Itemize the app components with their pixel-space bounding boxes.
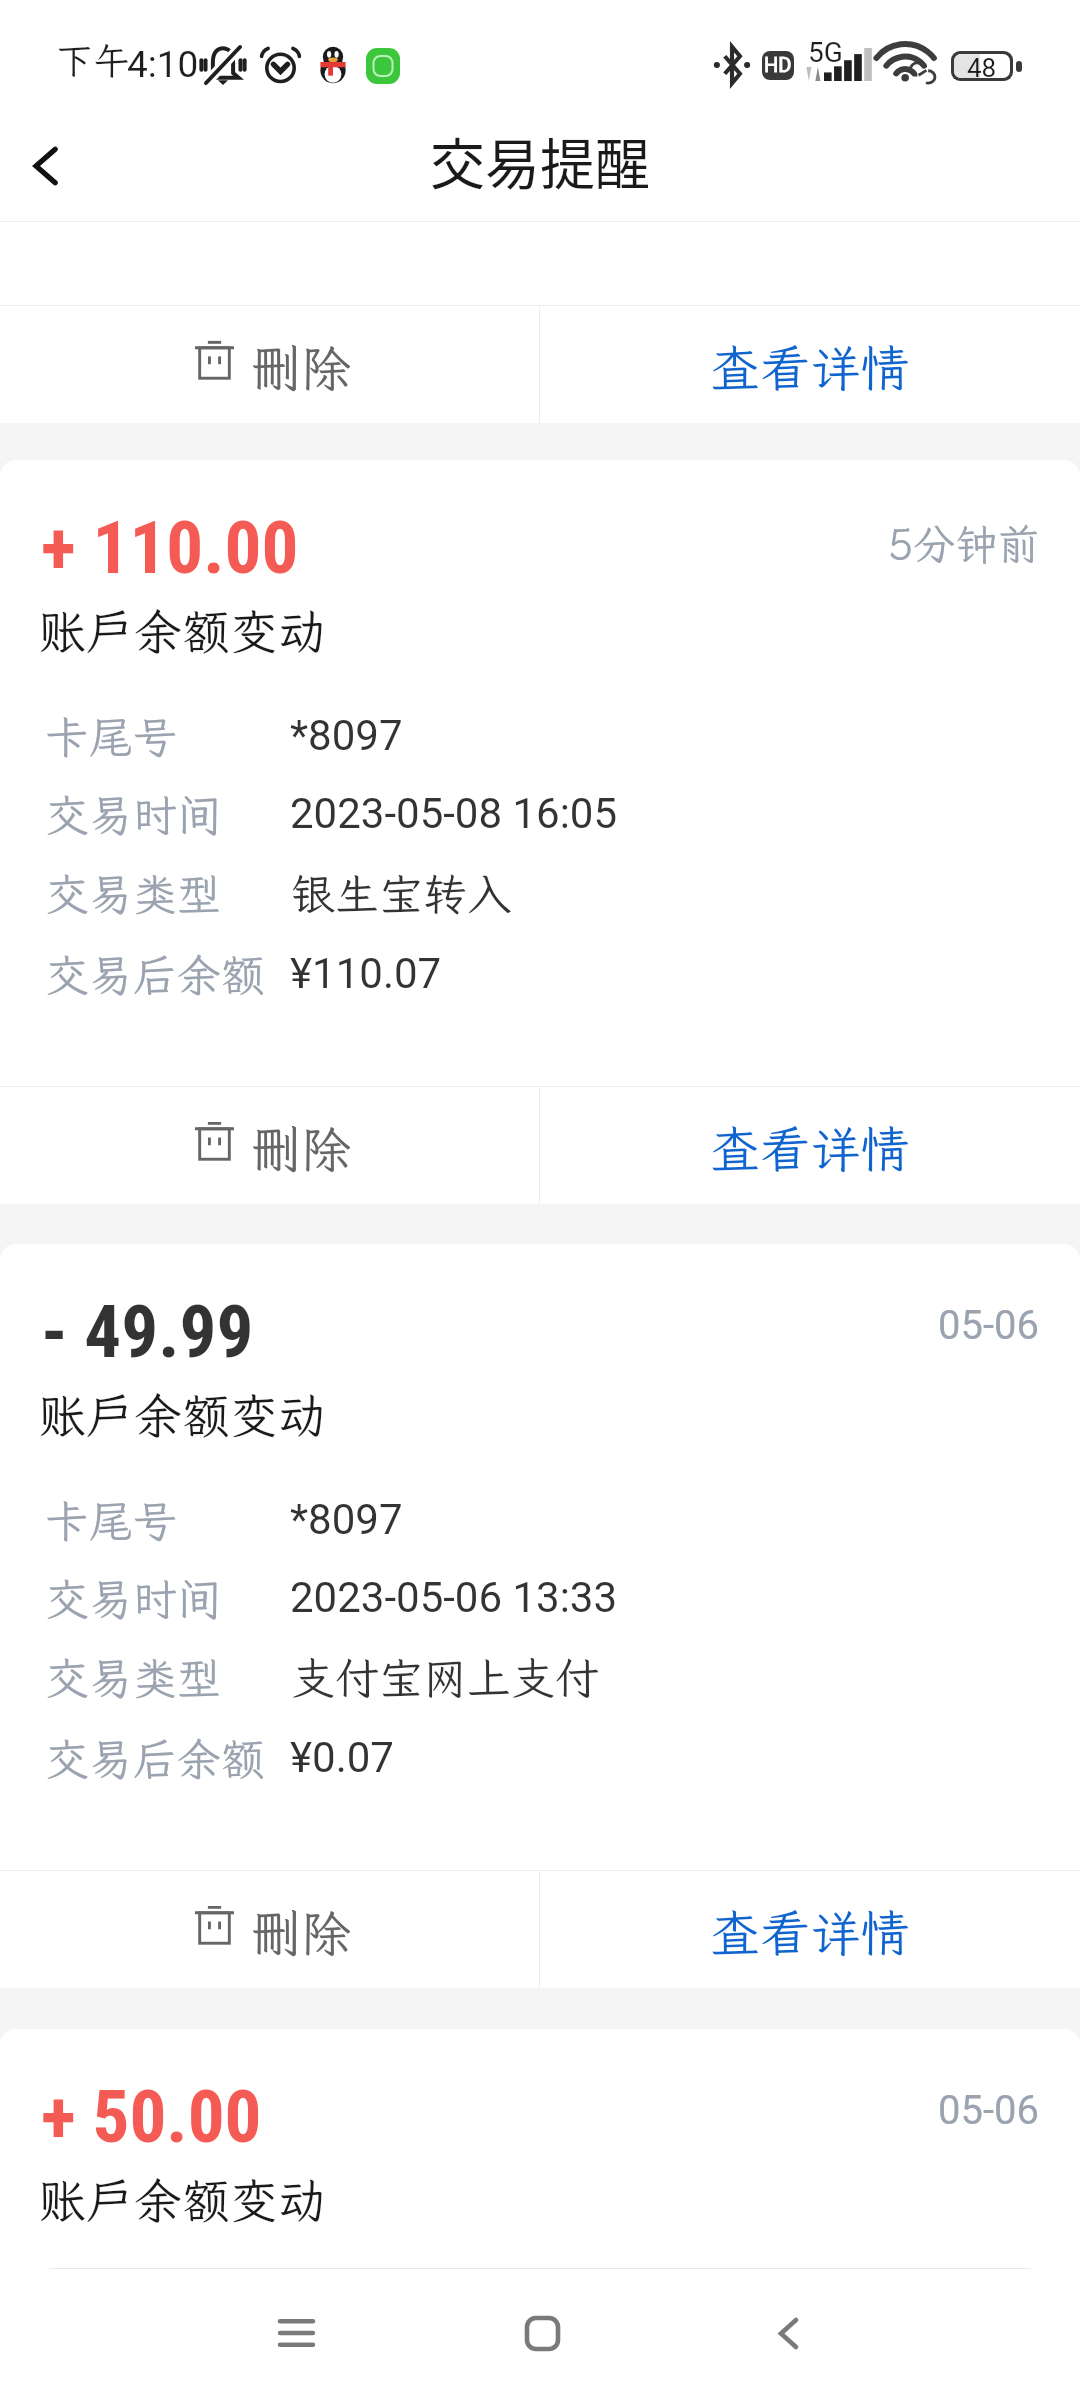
staticText: + 50.00 bbox=[41, 2074, 262, 2160]
staticText: ¥0.07 bbox=[290, 1733, 394, 1782]
staticText: 交易时间 bbox=[45, 786, 221, 844]
button[interactable]: + 110.00 bbox=[0, 460, 1080, 1204]
staticText: 查看详情 bbox=[710, 1115, 910, 1181]
staticText: ¥110.07 bbox=[290, 949, 442, 998]
staticText: 5分钟前 bbox=[888, 516, 1040, 571]
staticText: 48 bbox=[967, 53, 997, 77]
staticText: + 110.00 bbox=[41, 505, 299, 591]
staticText: 交易后余额 bbox=[45, 1730, 265, 1788]
staticText: 删除 bbox=[251, 2311, 351, 2377]
staticText: 删除 bbox=[251, 1899, 351, 1965]
button[interactable]: 查看详情 bbox=[540, 1087, 1080, 1204]
button[interactable]: 返回 bbox=[0, 118, 96, 214]
staticText: 查看详情 bbox=[710, 334, 910, 400]
button[interactable]: Home bbox=[462, 2268, 622, 2400]
staticText: HD bbox=[764, 53, 792, 76]
button[interactable]: 查看详情 bbox=[540, 1871, 1080, 1988]
button[interactable]: 查看详情 bbox=[540, 2283, 1080, 2400]
staticText: - 49.99 bbox=[41, 1289, 254, 1375]
staticText: 2023-05-06 13:33 bbox=[290, 1573, 618, 1622]
button[interactable]: Back bbox=[708, 2268, 868, 2400]
staticText: 支付宝网上支付 bbox=[291, 1649, 599, 1707]
staticText: 卡尾号 bbox=[45, 1492, 177, 1550]
staticText: 05-06 bbox=[938, 1302, 1039, 1349]
button[interactable]: 删除 bbox=[0, 1087, 539, 1204]
button[interactable]: 删除 bbox=[0, 306, 539, 423]
staticText: 下午 bbox=[56, 36, 130, 85]
staticText: 查看详情 bbox=[710, 2311, 910, 2377]
button[interactable]: 删除 bbox=[0, 2283, 539, 2400]
staticText: 删除 bbox=[251, 334, 351, 400]
staticText: 5G bbox=[808, 36, 843, 69]
staticText: 删除 bbox=[251, 1115, 351, 1181]
staticText: 交易后余额 bbox=[45, 946, 265, 1004]
staticText: 交易类型 bbox=[45, 1649, 221, 1707]
button[interactable]: Recent apps bbox=[216, 2268, 376, 2400]
staticText: 4:10 bbox=[127, 43, 199, 86]
staticText: 交易提醒 bbox=[430, 120, 651, 200]
staticText: 卡尾号 bbox=[45, 708, 177, 766]
staticText: 2023-05-08 16:05 bbox=[290, 789, 618, 838]
staticText: *8097 bbox=[290, 711, 403, 760]
button[interactable]: 查看详情 bbox=[540, 306, 1080, 423]
staticText: 账户余额变动 bbox=[38, 599, 327, 662]
staticText: 银生宝转入 bbox=[291, 865, 511, 923]
staticText: 05-06 bbox=[938, 2087, 1039, 2134]
staticText: *8097 bbox=[290, 2280, 403, 2329]
button[interactable]: - 49.99 bbox=[0, 1244, 1080, 1988]
staticText: 账户余额变动 bbox=[38, 2168, 327, 2231]
staticText: 账户余额变动 bbox=[38, 1383, 327, 1446]
button[interactable]: + 50.00 bbox=[0, 2029, 1080, 2400]
staticText: 交易时间 bbox=[45, 1570, 221, 1628]
staticText: *8097 bbox=[290, 1495, 403, 1544]
button[interactable]: 删除 bbox=[0, 1871, 539, 1988]
staticText: 查看详情 bbox=[710, 1899, 910, 1965]
staticText: 交易类型 bbox=[45, 865, 221, 923]
